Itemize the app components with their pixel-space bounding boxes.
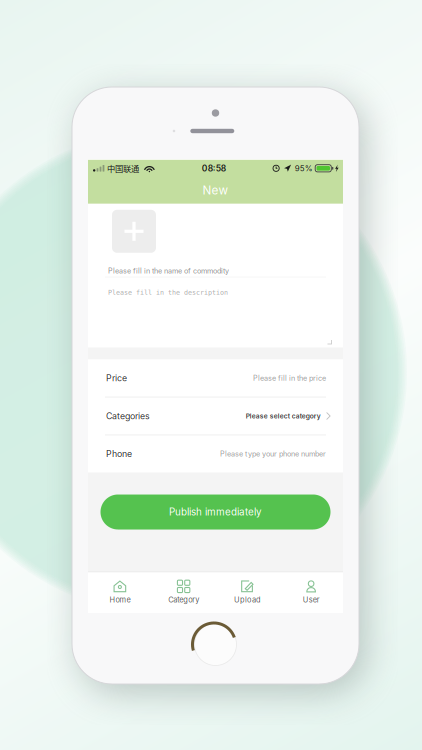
staticText: New [202,183,228,197]
staticText: Please fill in the price [253,374,326,382]
staticText: Price [106,373,127,383]
staticText: 中国联通 [107,162,139,174]
staticText: Categories [106,411,150,421]
staticText: Please type your phone number [220,449,326,458]
button[interactable]: Home [88,572,152,612]
staticText: Please fill in the description [108,288,228,296]
button[interactable]: Categories [88,397,343,435]
staticText: Publish immediately [169,506,262,518]
button[interactable]: Category [152,572,216,612]
button[interactable]: Price [88,359,343,397]
staticText: Phone [106,449,132,459]
staticText: Please fill in the name of commodity [108,266,229,275]
staticText: 08:58 [202,163,226,173]
button[interactable]: Upload [215,572,279,612]
button[interactable]: User [279,572,343,612]
staticText: Home [109,595,130,604]
staticText: User [303,595,320,604]
button[interactable]: Add photo [112,210,156,253]
staticText: Category [168,595,199,604]
staticText: Please select category [246,412,321,420]
staticText: Upload [234,595,261,604]
staticText: 95% [295,163,313,173]
button[interactable]: Phone [88,435,343,472]
button[interactable]: Publish immediately [100,494,330,529]
